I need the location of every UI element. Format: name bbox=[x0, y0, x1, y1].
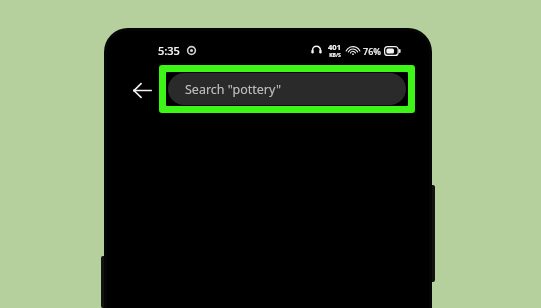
staticText: Search "pottery" bbox=[185, 81, 282, 98]
button[interactable]: Search "pottery" bbox=[168, 73, 406, 105]
staticText: 401 bbox=[328, 42, 341, 52]
button[interactable]: Back bbox=[125, 73, 159, 107]
button[interactable]: Search "pottery" bbox=[166, 72, 408, 106]
staticText: 5:35 bbox=[158, 43, 180, 58]
staticText: KB/S bbox=[329, 52, 341, 59]
staticText: 76% bbox=[363, 45, 381, 57]
